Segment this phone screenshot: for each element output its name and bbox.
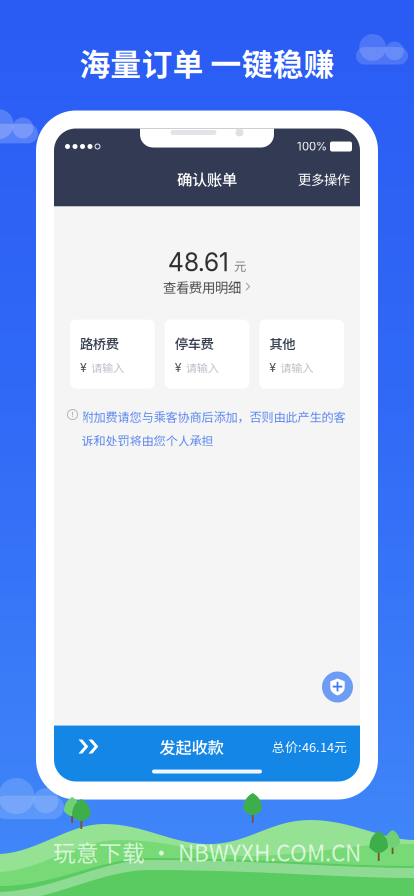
staticText: 请输入 <box>186 359 219 375</box>
staticText: 48.61 <box>168 247 229 277</box>
staticText: 停车费 <box>175 334 214 353</box>
button[interactable]: 更多操作 <box>293 163 355 194</box>
staticText: 更多操作 <box>298 169 350 188</box>
button[interactable]: 路桥费 <box>70 320 155 389</box>
button[interactable]: 其他 <box>259 320 344 389</box>
staticText: 请输入 <box>280 359 313 375</box>
button[interactable]: 停车费 <box>165 320 249 389</box>
staticText: 100% <box>297 140 327 153</box>
staticText: ¥ <box>175 360 182 375</box>
staticText: 查看费用明细 <box>163 277 241 297</box>
staticText: ¥ <box>269 360 276 375</box>
staticText: 路桥费 <box>80 334 119 353</box>
staticText: 发起收款 <box>159 735 223 758</box>
staticText: 总价:46.14元 <box>272 737 347 756</box>
button[interactable]: 查看费用明细 <box>163 277 251 297</box>
staticText: 元 <box>234 256 246 274</box>
staticText: 附加费请您与乘客协商后添加，否则由此产生的客诉和处罚将由您个人承担 <box>81 408 345 449</box>
button[interactable]: Slide to start trip <box>54 729 111 764</box>
staticText: 海量订单 一键稳赚 <box>79 40 334 84</box>
staticText: 确认账单 <box>177 168 237 190</box>
button[interactable]: Add extra fee <box>322 671 353 702</box>
staticText: 请输入 <box>91 359 124 375</box>
button[interactable]: 发起收款 <box>159 729 223 764</box>
staticText: 其他 <box>269 334 295 353</box>
staticText: ¥ <box>80 360 87 375</box>
staticText: 玩意下载 · NBWYXH.COM.CN <box>53 835 361 868</box>
